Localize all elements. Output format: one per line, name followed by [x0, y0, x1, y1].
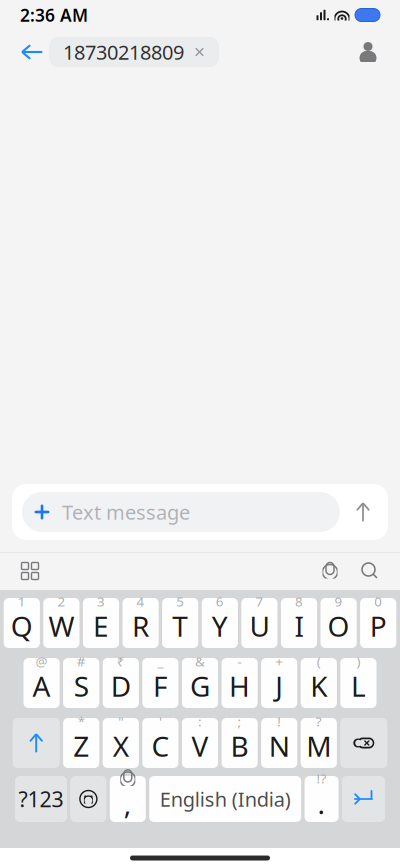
button[interactable]: Period: [305, 776, 339, 822]
button[interactable]: (: [301, 658, 337, 708]
staticText: 8: [295, 593, 303, 610]
staticText: .: [318, 785, 326, 822]
staticText: #: [77, 653, 86, 670]
button[interactable]: -: [221, 658, 258, 708]
staticText: ?123: [18, 785, 63, 813]
button[interactable]: 8: [281, 598, 317, 648]
button[interactable]: Numbers and symbols: [15, 776, 67, 822]
button[interactable]: 18730218809: [49, 37, 219, 67]
button[interactable]: ?: [301, 718, 337, 768]
staticText: H: [229, 667, 250, 705]
staticText: :: [198, 713, 202, 730]
staticText: K: [310, 667, 327, 705]
button[interactable]: !: [261, 718, 297, 768]
staticText: W: [48, 607, 74, 645]
button[interactable]: ₹: [103, 658, 139, 708]
staticText: 6: [216, 593, 224, 610]
staticText: ;: [238, 713, 242, 730]
staticText: D: [111, 667, 131, 705]
staticText: 1: [18, 593, 26, 610]
button[interactable]: Back: [15, 35, 49, 69]
button[interactable]: 3: [83, 598, 119, 648]
staticText: 2:36 AM: [20, 3, 88, 26]
staticText: +: [275, 653, 283, 670]
button[interactable]: ": [103, 718, 139, 768]
button[interactable]: ;: [221, 718, 258, 768]
staticText: U: [249, 607, 269, 645]
button[interactable]: #: [63, 658, 99, 708]
staticText: !: [277, 713, 281, 730]
button[interactable]: @: [23, 658, 60, 708]
button[interactable]: 5: [162, 598, 198, 648]
staticText: F: [153, 667, 168, 705]
staticText: A: [33, 667, 51, 705]
staticText: 5: [176, 593, 184, 610]
staticText: O: [328, 607, 350, 645]
staticText: P: [370, 607, 387, 645]
staticText: L: [351, 667, 366, 705]
staticText: B: [231, 727, 249, 765]
staticText: Z: [73, 727, 89, 765]
staticText: -: [238, 653, 242, 670]
staticText: M: [306, 727, 331, 765]
button[interactable]: *: [63, 718, 99, 768]
staticText: Text message: [62, 499, 190, 525]
staticText: @: [36, 653, 48, 670]
button[interactable]: :: [182, 718, 218, 768]
button[interactable]: +: [261, 658, 297, 708]
staticText: ,: [124, 785, 132, 822]
staticText: Y: [212, 607, 228, 645]
staticText: R: [132, 607, 149, 645]
staticText: Q: [11, 607, 33, 645]
staticText: English (India): [160, 786, 291, 812]
staticText: 3: [97, 593, 105, 610]
staticText: G: [190, 667, 210, 705]
staticText: ₹: [117, 653, 125, 670]
staticText: !?: [317, 770, 327, 787]
button[interactable]: Add attachment: [22, 492, 62, 532]
button[interactable]: Send: [340, 490, 386, 534]
staticText: (: [317, 653, 321, 670]
button[interactable]: Apps: [10, 554, 50, 588]
button[interactable]: Return: [342, 776, 385, 822]
button[interactable]: Contacts: [351, 35, 385, 69]
button[interactable]: 2: [43, 598, 79, 648]
staticText: *: [78, 713, 85, 730]
button[interactable]: 6: [202, 598, 238, 648]
button[interactable]: Voice input: [310, 554, 350, 588]
staticText: _: [157, 653, 163, 670]
button[interactable]: Backspace: [340, 718, 387, 768]
staticText: X: [113, 727, 129, 765]
staticText: 4: [137, 593, 145, 610]
button[interactable]: ': [142, 718, 178, 768]
button[interactable]: ): [340, 658, 376, 708]
staticText: J: [275, 667, 283, 705]
staticText: N: [269, 727, 290, 765]
staticText: 0: [374, 593, 382, 610]
button[interactable]: Comma: [110, 776, 146, 822]
staticText: C: [151, 727, 169, 765]
staticText: T: [172, 607, 188, 645]
staticText: V: [191, 727, 208, 765]
staticText: E: [93, 607, 109, 645]
button[interactable]: Emoji: [70, 776, 106, 822]
button[interactable]: 1: [4, 598, 40, 648]
button[interactable]: English (India): [149, 776, 301, 822]
button[interactable]: 0: [360, 598, 396, 648]
button[interactable]: Search: [350, 554, 390, 588]
staticText: 9: [335, 593, 343, 610]
button[interactable]: 9: [320, 598, 357, 648]
button[interactable]: 7: [241, 598, 277, 648]
staticText: 7: [255, 593, 263, 610]
button[interactable]: 4: [122, 598, 159, 648]
button[interactable]: _: [142, 658, 178, 708]
staticText: 18730218809: [63, 39, 184, 65]
staticText: ?: [316, 713, 322, 730]
staticText: &: [195, 653, 205, 670]
staticText: 2: [57, 593, 65, 610]
button[interactable]: &: [182, 658, 218, 708]
staticText: ": [118, 713, 123, 730]
staticText: S: [74, 667, 89, 705]
staticText: ': [159, 713, 162, 730]
button[interactable]: Shift: [13, 718, 60, 768]
